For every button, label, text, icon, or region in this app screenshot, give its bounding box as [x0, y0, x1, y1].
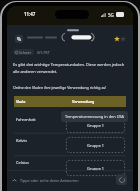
- staticText: Gruppe 1: [87, 166, 105, 171]
- button[interactable]: Tabs: [15, 35, 23, 43]
- staticText: Skala: [16, 99, 26, 104]
- staticText: Celsius: [16, 160, 29, 165]
- staticText: Tippe oder ziehe deine Antworten: [20, 178, 79, 183]
- button[interactable]: Gruppe 1: [66, 117, 125, 133]
- staticText: Gruppe 1: [87, 143, 105, 148]
- button[interactable]: Tippe oder ziehe deine Antworten: [12, 178, 79, 183]
- staticText: Temperaturmessung in den USA: [65, 114, 125, 119]
- staticText: Gruppe 1: [87, 123, 105, 128]
- staticText: 0/5 PKT: [37, 50, 50, 55]
- button[interactable]: Schwer: [13, 49, 34, 55]
- button[interactable]: Reload: [116, 174, 127, 185]
- button[interactable]: Favourites: [120, 36, 126, 42]
- staticText: Schwer: [19, 50, 32, 55]
- staticText: 11:47: [24, 11, 36, 17]
- staticText: Es gibt drei wichtige Temperaturskalen. …: [13, 62, 125, 74]
- button[interactable]: Gruppe 1: [66, 137, 125, 153]
- button[interactable]: Bookmark: [114, 36, 120, 42]
- button[interactable]: Temperaturmessung in den USA: [61, 111, 128, 122]
- staticText: Kelvin: [16, 138, 27, 143]
- staticText: Ordne den Skalen ihre jeweilige Verwendu…: [13, 85, 107, 90]
- button[interactable]: Gruppe 1: [66, 160, 125, 176]
- staticText: Verwendung: [72, 99, 95, 104]
- staticText: 5G: [108, 12, 114, 18]
- staticText: Fahrenheit: [16, 117, 36, 122]
